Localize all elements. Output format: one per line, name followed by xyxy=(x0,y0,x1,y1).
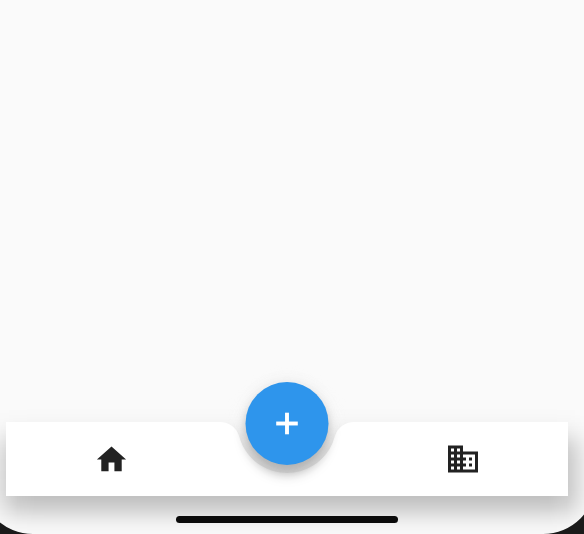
button[interactable]: Home xyxy=(56,422,167,496)
button[interactable]: Business xyxy=(407,422,518,496)
